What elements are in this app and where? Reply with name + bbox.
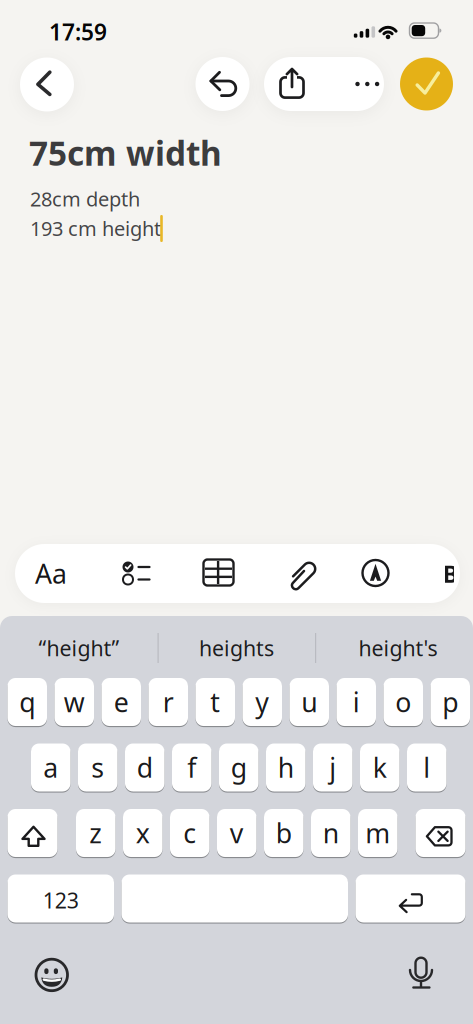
button[interactable] [203,559,234,587]
button[interactable]: y [242,678,282,726]
staticText: a [43,750,58,785]
button[interactable] [119,557,151,589]
staticText: s [91,750,104,785]
button[interactable]: v [217,809,256,857]
button[interactable]: q [7,678,47,726]
button[interactable] [272,64,312,104]
button[interactable]: height's [358,634,437,662]
staticText: v [230,815,244,851]
button[interactable]: n [311,809,350,857]
staticText: z [89,815,102,851]
button[interactable]: l [407,743,446,791]
staticText: u [301,684,317,720]
button[interactable]: Aa [35,556,67,591]
button[interactable]: h [266,743,305,791]
button[interactable]: m [358,809,397,857]
button[interactable] [415,809,465,857]
staticText: t [210,684,220,720]
staticText: y [255,684,269,720]
button[interactable]: d [125,743,164,791]
staticText: q [19,684,35,720]
button[interactable]: x [123,809,162,857]
button[interactable]: s [78,743,117,791]
button[interactable]: j [313,743,352,791]
button[interactable]: e [101,678,141,726]
staticText: “height” [38,634,119,662]
button[interactable] [409,956,433,990]
staticText: 28cm depth [30,185,140,212]
button[interactable]: w [54,678,94,726]
staticText: p [442,684,458,720]
button[interactable]: “height” [38,634,119,662]
staticText: c [183,815,196,851]
staticText: Aa [35,556,67,591]
staticText: n [323,815,339,851]
button[interactable]: 123 [7,874,114,922]
button[interactable]: a [31,743,70,791]
staticText: f [187,750,196,785]
staticText: k [373,750,387,785]
staticText: height's [358,634,437,662]
button[interactable]: p [430,678,470,726]
button[interactable] [35,958,69,992]
button[interactable] [286,557,318,589]
staticText: B [443,558,459,589]
button[interactable]: k [360,743,399,791]
button[interactable]: t [195,678,235,726]
staticText: w [64,684,85,720]
button[interactable] [195,57,249,111]
staticText: g [231,750,247,785]
staticText: heights [199,634,274,662]
staticText: l [423,750,430,785]
staticText: o [395,684,411,720]
button[interactable]: B [443,558,453,589]
button[interactable]: b [264,809,303,857]
button[interactable] [362,560,390,588]
button[interactable] [20,57,74,111]
button[interactable] [121,874,348,922]
staticText: i [353,684,360,720]
button[interactable]: u [289,678,329,726]
button[interactable] [400,57,453,110]
button[interactable]: heights [199,634,274,662]
staticText: e [114,684,129,720]
staticText: x [136,815,150,851]
staticText: 123 [43,886,79,914]
button[interactable] [345,82,369,86]
button[interactable]: g [219,743,258,791]
button[interactable]: c [170,809,209,857]
button[interactable] [7,809,57,857]
staticText: 17:59 [49,16,107,47]
button[interactable]: r [148,678,188,726]
staticText: m [365,815,390,851]
staticText: 193 cm height [30,215,161,242]
button[interactable]: i [336,678,376,726]
staticText: b [276,815,292,851]
button[interactable] [355,874,465,922]
button[interactable]: o [383,678,423,726]
staticText: h [278,750,294,785]
staticText: d [137,750,153,785]
staticText: 75cm width [29,131,222,175]
staticText: r [163,684,174,720]
staticText: j [329,750,336,785]
button[interactable]: f [172,743,211,791]
button[interactable]: z [76,809,115,857]
